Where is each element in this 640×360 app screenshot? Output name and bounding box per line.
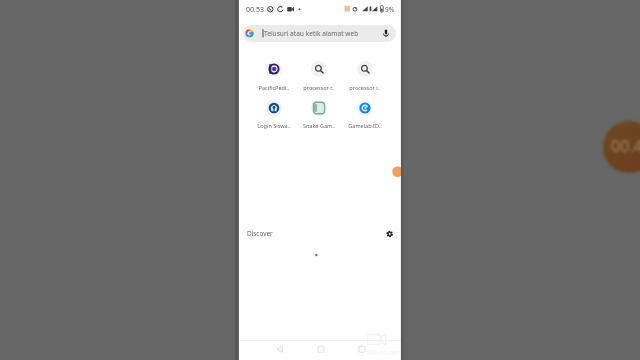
staticText: Telusuri atau ketik alamat web bbox=[264, 29, 359, 38]
button[interactable]: Discover settings bbox=[382, 226, 398, 242]
staticText: Login Siswa.. bbox=[251, 122, 297, 129]
button[interactable]: PacificPedi.. bbox=[251, 59, 297, 87]
button[interactable]: Recent apps bbox=[342, 342, 382, 360]
staticText: Snake Gam.. bbox=[296, 122, 342, 129]
staticText: 9% bbox=[385, 5, 395, 14]
button[interactable]: Back bbox=[260, 342, 300, 360]
button[interactable]: Voice search bbox=[380, 26, 396, 42]
button[interactable]: Gamelab.ID.. bbox=[342, 98, 388, 126]
staticText: XRecorder bbox=[366, 348, 400, 358]
staticText: PacificPedi.. bbox=[251, 84, 297, 91]
staticText: 00.53 bbox=[246, 5, 264, 15]
staticText: 00.45 bbox=[611, 135, 640, 157]
staticText: processor r.. bbox=[296, 84, 342, 91]
button[interactable]: Login Siswa.. bbox=[251, 98, 297, 126]
staticText: Discover bbox=[247, 229, 273, 238]
staticText: processor i.. bbox=[342, 84, 388, 91]
button[interactable]: Recording timer bbox=[603, 121, 640, 173]
button[interactable]: Home bbox=[301, 342, 341, 360]
button[interactable]: Snake Gam.. bbox=[296, 98, 342, 126]
button[interactable]: processor r.. bbox=[296, 59, 342, 87]
button[interactable]: processor i.. bbox=[342, 59, 388, 87]
staticText: Gamelab.ID.. bbox=[342, 122, 388, 129]
button[interactable]: Search or type web address bbox=[243, 25, 396, 42]
